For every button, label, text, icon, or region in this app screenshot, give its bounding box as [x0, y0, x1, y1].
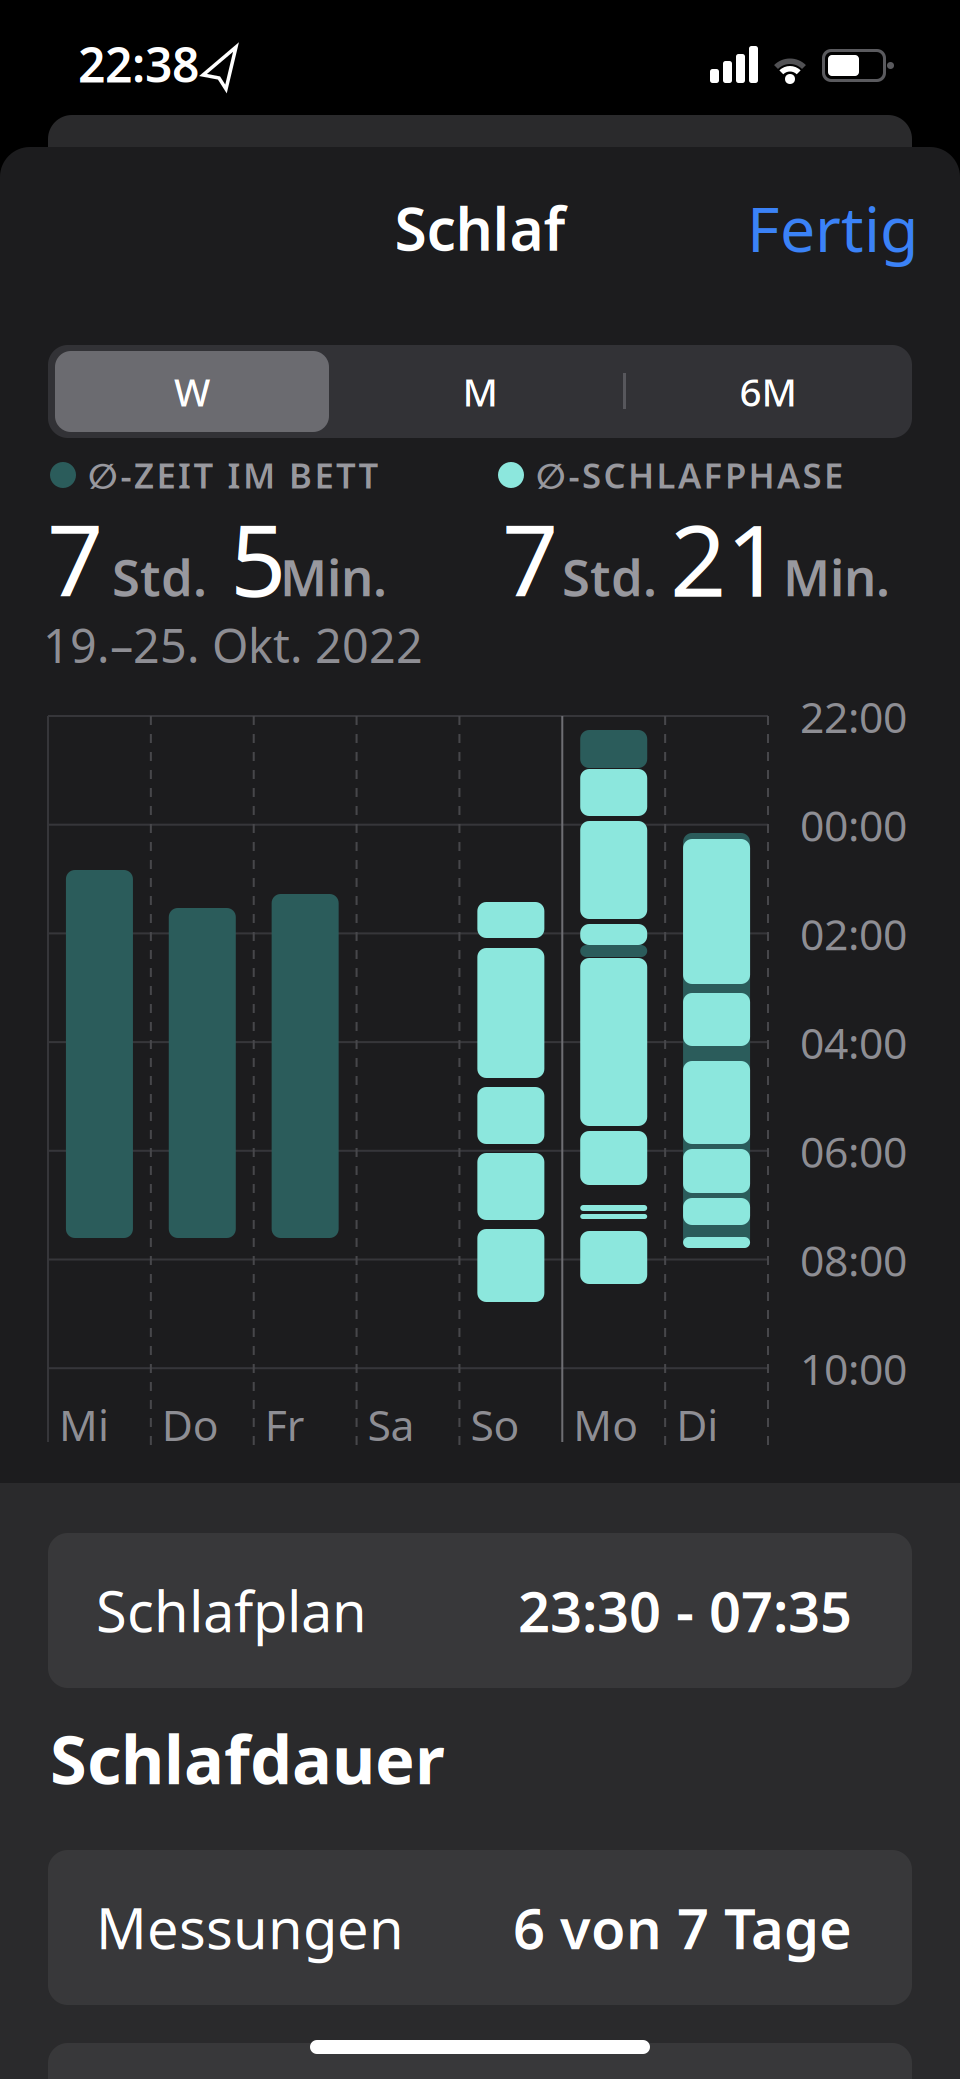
staticText: 7: [502, 493, 558, 624]
staticText: 04:00: [800, 1014, 907, 1071]
button[interactable]: Fertig: [747, 186, 919, 269]
staticText: Min.: [280, 543, 387, 610]
staticText: ∅-SCHLAFPHASE: [536, 452, 843, 498]
staticText: Fertig: [747, 186, 919, 269]
staticText: Sa: [368, 1396, 415, 1453]
staticText: ∅-ZEIT IM BETT: [88, 452, 378, 498]
staticText: Do: [162, 1396, 219, 1453]
staticText: Fr: [265, 1396, 305, 1453]
staticText: 19.–25. Okt. 2022: [43, 614, 423, 676]
staticText: Std.: [112, 543, 207, 610]
staticText: W: [174, 366, 210, 417]
staticText: 08:00: [800, 1231, 907, 1288]
button[interactable]: Schlafplan: [48, 1533, 912, 1688]
staticText: 6 von 7 Tage: [513, 1890, 852, 1965]
staticText: 06:00: [800, 1123, 907, 1179]
staticText: 22:38: [78, 32, 199, 96]
button[interactable]: 6M: [624, 345, 912, 438]
staticText: 22:00: [800, 688, 907, 745]
staticText: M: [462, 366, 497, 417]
staticText: 02:00: [800, 905, 907, 962]
staticText: Mo: [573, 1396, 638, 1453]
staticText: Messungen: [96, 1890, 404, 1965]
staticText: 7: [47, 493, 103, 624]
staticText: Schlafdauer: [50, 1714, 445, 1802]
staticText: Min.: [783, 543, 890, 610]
staticText: 6M: [739, 366, 796, 417]
staticText: Schlaf: [394, 189, 565, 267]
staticText: 21: [670, 493, 782, 624]
staticText: 00:00: [800, 797, 907, 853]
staticText: 5: [230, 493, 286, 624]
staticText: 10:00: [800, 1340, 907, 1397]
staticText: Mi: [59, 1396, 109, 1453]
button[interactable]: W: [48, 345, 336, 438]
staticText: 23:30 - 07:35: [518, 1573, 852, 1648]
staticText: Di: [676, 1396, 718, 1453]
staticText: Std.: [562, 543, 657, 610]
staticText: Schlafplan: [96, 1573, 367, 1648]
staticText: So: [470, 1396, 519, 1453]
button[interactable]: M: [336, 345, 624, 438]
